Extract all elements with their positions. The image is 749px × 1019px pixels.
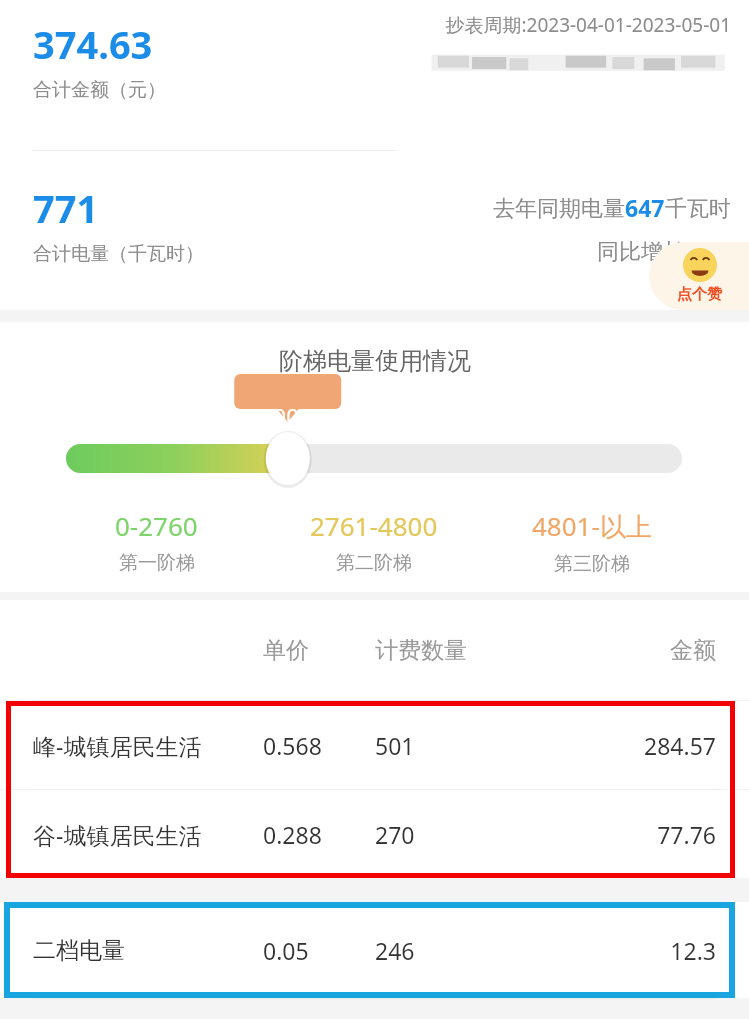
- staticText: 峰-城镇居民生活: [33, 730, 202, 761]
- staticText: 246: [375, 935, 415, 966]
- staticText: 19.2: [685, 235, 731, 266]
- button[interactable]: 谷-城镇居民生活: [0, 790, 749, 878]
- staticText: 771: [33, 182, 99, 234]
- staticText: 第三阶梯: [554, 552, 630, 576]
- staticText: 计费数量: [375, 636, 467, 665]
- staticText: 单价: [263, 636, 309, 665]
- staticText: 374.63: [33, 18, 153, 70]
- staticText: 0.288: [263, 819, 322, 850]
- staticText: 谷-城镇居民生活: [33, 819, 202, 850]
- staticText: 77.76: [657, 819, 716, 850]
- button[interactable]: 0-2760: [48, 508, 265, 575]
- staticText: 点个赞: [677, 285, 722, 304]
- staticText: 去年同期电量: [493, 195, 625, 223]
- staticText: 金额: [670, 636, 716, 665]
- staticText: 同比增长: [597, 238, 685, 266]
- staticText: 2761-4800: [310, 508, 438, 543]
- staticText: 第二阶梯: [336, 551, 412, 575]
- staticText: 12.3: [670, 935, 716, 966]
- staticText: 阶梯电量使用情况: [279, 346, 471, 376]
- button[interactable]: 二档电量: [0, 902, 749, 998]
- staticText: 抄表周期:2023-04-01-2023-05-01: [419, 12, 731, 38]
- staticText: 第一阶梯: [119, 551, 195, 575]
- staticText: 270: [375, 819, 415, 850]
- staticText: 4801-以上: [532, 508, 652, 544]
- button[interactable]: 点个赞: [649, 242, 749, 310]
- staticText: 284.57: [644, 730, 716, 761]
- staticText: 二档电量: [33, 936, 125, 965]
- staticText: 合计金额（元）: [33, 78, 166, 102]
- button[interactable]: 峰-城镇居民生活: [0, 701, 749, 789]
- staticText: 千瓦时: [665, 195, 731, 223]
- staticText: 647: [625, 192, 665, 223]
- staticText: 3006: [261, 401, 312, 431]
- staticText: 0-2760: [115, 508, 198, 543]
- staticText: 0.568: [263, 730, 322, 761]
- button[interactable]: 2761-4800: [265, 508, 483, 575]
- staticText: 0.05: [263, 935, 309, 966]
- staticText: 合计电量（千瓦时）: [33, 242, 204, 266]
- button[interactable]: 4801-以上: [483, 508, 701, 576]
- staticText: 501: [375, 730, 415, 761]
